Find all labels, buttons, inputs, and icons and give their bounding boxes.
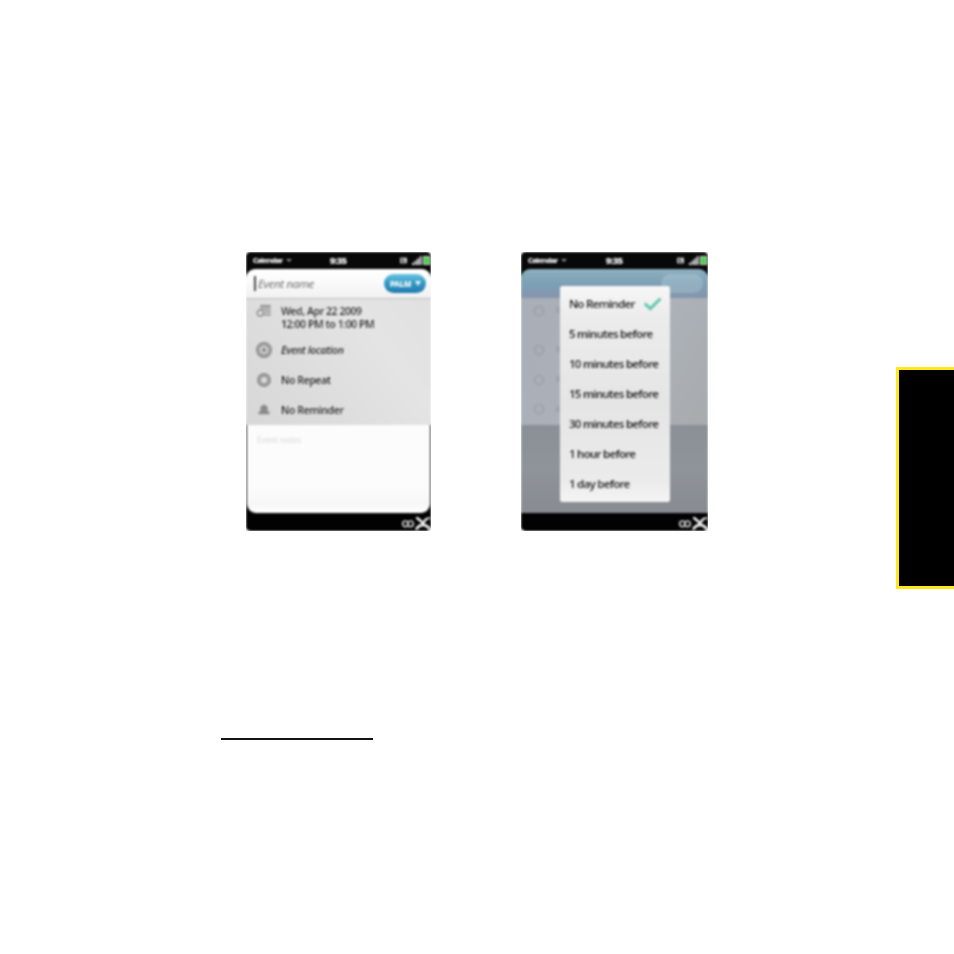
button[interactable]: No Reminder xyxy=(569,289,666,319)
staticText: Event notes xyxy=(257,434,301,445)
staticText: 30 minutes before xyxy=(569,416,659,432)
other: Voicemail xyxy=(402,520,414,527)
staticText: 9:35 xyxy=(330,254,347,266)
staticText: 10 minutes before xyxy=(569,356,659,372)
staticText: Calendar xyxy=(253,255,283,265)
button[interactable]: 10 minutes before xyxy=(569,349,666,379)
button[interactable]: 1 hour before xyxy=(569,439,666,469)
button[interactable]: 15 minutes before xyxy=(569,379,666,409)
staticText: No Reminder xyxy=(569,296,635,312)
staticText: 9:35 xyxy=(606,254,623,266)
button[interactable] xyxy=(246,298,431,334)
staticText: 15 minutes before xyxy=(569,386,659,402)
other: Palm gesture area xyxy=(416,517,430,529)
staticText: 1 day before xyxy=(569,476,630,492)
button[interactable]: Event name xyxy=(246,269,431,298)
button[interactable] xyxy=(246,364,431,394)
button[interactable]: Calendar xyxy=(253,255,292,265)
staticText: No Repeat xyxy=(281,373,331,387)
staticText: Calendar xyxy=(528,255,558,265)
other: Voicemail xyxy=(679,520,691,527)
staticText: No Reminder xyxy=(281,403,344,417)
button[interactable] xyxy=(246,394,431,425)
staticText: PALM xyxy=(390,278,412,289)
staticText: Event location xyxy=(281,343,344,357)
button[interactable]: 5 minutes before xyxy=(569,319,666,349)
staticText: Event name xyxy=(258,276,314,292)
button[interactable]: PALM xyxy=(384,274,426,293)
staticText: 12:00 PM to 1:00 PM xyxy=(281,317,375,331)
button[interactable] xyxy=(246,334,431,364)
staticText: 1 hour before xyxy=(569,446,636,462)
button[interactable]: Calendar xyxy=(528,255,567,265)
staticText: Wed, Apr 22 2009 xyxy=(281,304,362,318)
button[interactable]: 30 minutes before xyxy=(569,409,666,439)
button[interactable]: 1 day before xyxy=(569,469,666,499)
staticText: 5 minutes before xyxy=(569,326,653,342)
button[interactable]: Event notes xyxy=(247,425,430,513)
other: Palm gesture area xyxy=(693,517,707,529)
